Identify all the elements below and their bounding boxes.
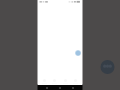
button[interactable]: Add bbox=[75, 50, 81, 56]
